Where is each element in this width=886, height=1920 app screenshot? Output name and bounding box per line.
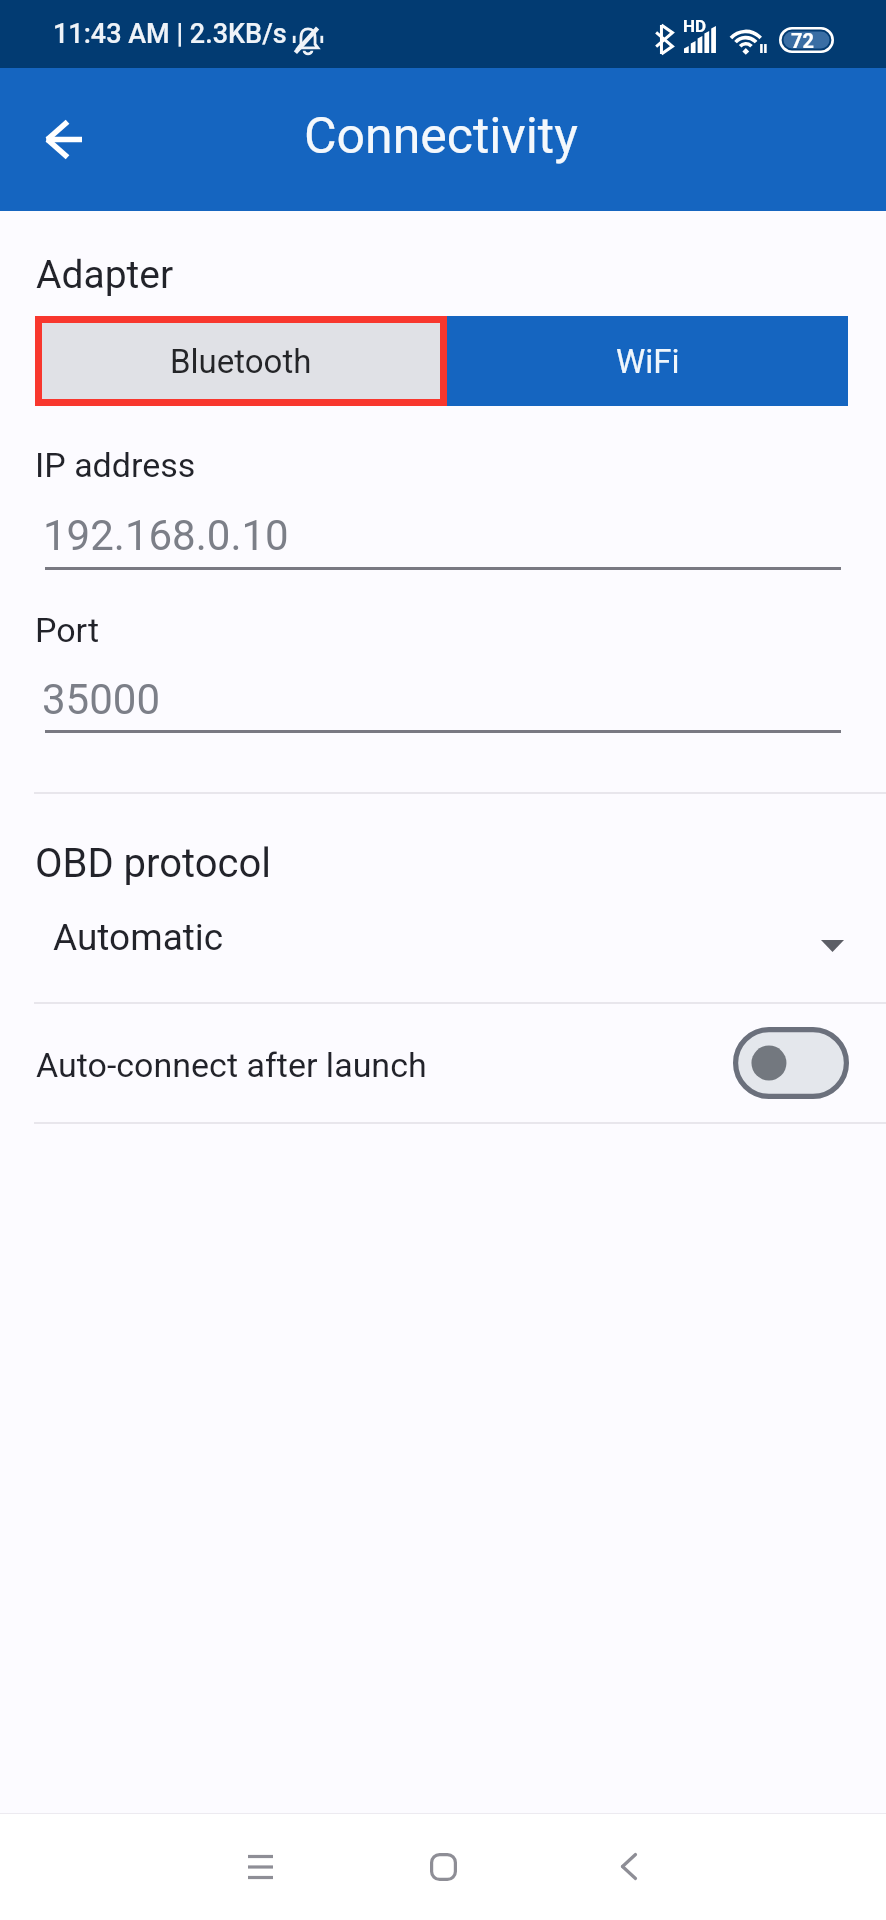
staticText: Bluetooth [170,342,312,381]
staticText: Adapter [36,252,174,298]
button[interactable]: Home [367,1813,519,1920]
staticText: Port [35,610,100,650]
staticText: 11:43 AM | 2.3KB/s [53,18,287,50]
button[interactable]: WiFi [447,316,848,406]
button[interactable]: Automatic [0,910,886,1000]
staticText: IP address [35,445,196,485]
button[interactable]: Auto-connect after launch [0,1004,886,1123]
button[interactable]: Recent apps [184,1813,336,1920]
button[interactable]: 192.168.0.10 [45,500,841,570]
staticText: 192.168.0.10 [43,511,289,560]
staticText: Auto-connect after launch [36,1045,427,1085]
staticText: 72 [791,29,814,52]
staticText: WiFi [616,342,680,381]
button[interactable]: Bluetooth [35,316,447,406]
staticText: HD [683,16,707,36]
staticText: Automatic [53,916,224,959]
staticText: OBD protocol [35,840,272,887]
staticText: Connectivity [304,107,578,166]
button[interactable]: Back [553,1813,705,1920]
button[interactable]: Navigate up [22,98,104,180]
button[interactable]: 35000 [45,663,841,733]
staticText: 35000 [42,675,161,724]
